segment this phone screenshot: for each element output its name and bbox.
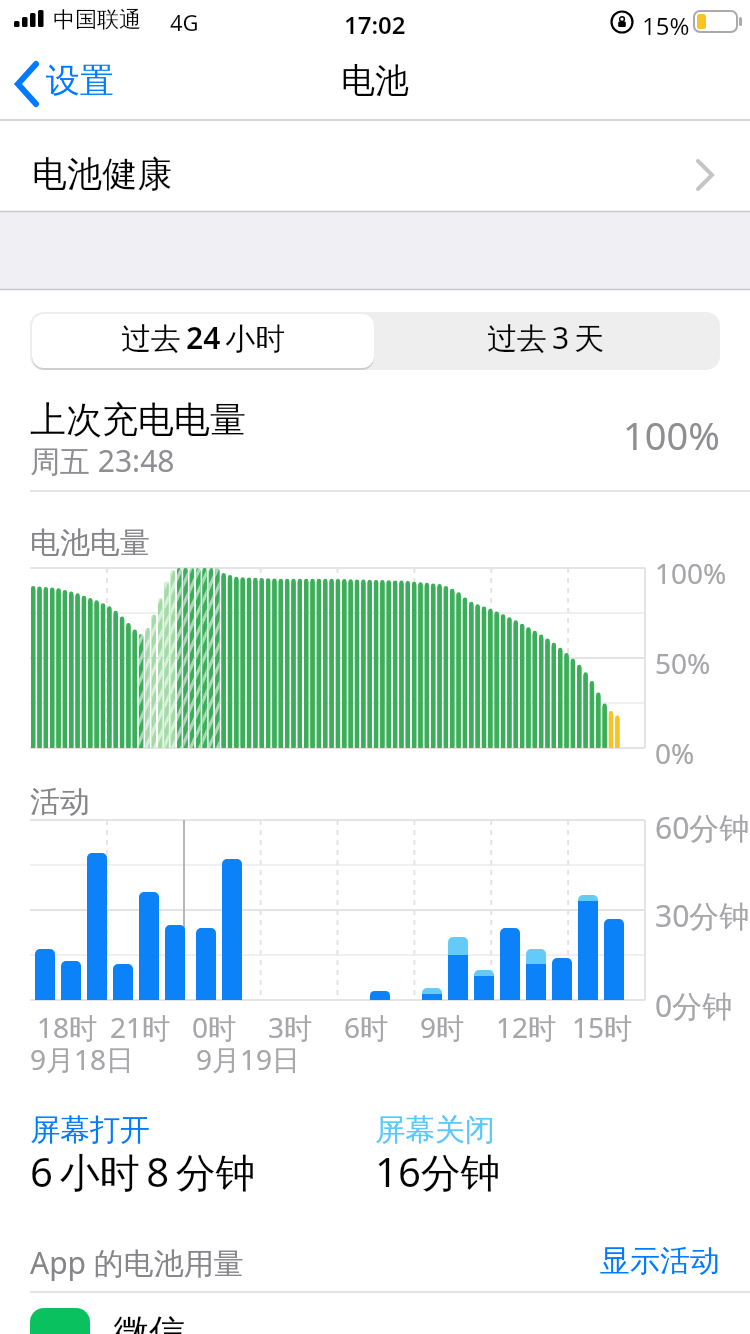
staticText: 9月18日 xyxy=(30,1040,135,1078)
staticText: 电池电量 xyxy=(30,524,150,562)
staticText: 50% xyxy=(655,644,711,682)
staticText: 电池 xyxy=(341,59,409,102)
staticText: 30分钟 xyxy=(655,895,750,936)
staticText: 15时 xyxy=(572,1008,633,1046)
staticText: App 的电池用量 xyxy=(30,1242,244,1283)
staticText: 21时 xyxy=(110,1008,171,1046)
staticText: 9时 xyxy=(420,1008,465,1046)
staticText: 上次充电电量 xyxy=(30,397,246,442)
button[interactable] xyxy=(0,50,130,114)
button[interactable] xyxy=(600,1240,720,1280)
staticText: 6 小时 8 分钟 xyxy=(30,1144,256,1199)
staticText: 0时 xyxy=(192,1008,237,1046)
button[interactable] xyxy=(0,121,750,211)
staticText: 18时 xyxy=(37,1008,98,1046)
staticText: 中国联通 xyxy=(53,6,141,34)
staticText: 15% xyxy=(642,9,690,42)
staticText: 9月19日 xyxy=(196,1040,301,1078)
staticText: 17:02 xyxy=(344,8,406,41)
staticText: 4G xyxy=(170,7,199,37)
staticText: 电池健康 xyxy=(32,152,172,196)
button[interactable] xyxy=(30,312,375,370)
staticText: 100% xyxy=(655,554,727,592)
staticText: 显示活动 xyxy=(600,1242,720,1280)
staticText: 3时 xyxy=(268,1008,313,1046)
staticText: 12时 xyxy=(496,1008,557,1046)
staticText: 设置 xyxy=(46,59,114,102)
staticText: 屏幕打开 xyxy=(30,1111,150,1149)
staticText: 周五 23:48 xyxy=(30,440,175,481)
staticText: 16分钟 xyxy=(375,1144,501,1199)
staticText: 微信 xyxy=(113,1310,185,1334)
staticText: 6时 xyxy=(344,1008,389,1046)
staticText: 60分钟 xyxy=(655,807,750,848)
staticText: 屏幕关闭 xyxy=(375,1111,495,1149)
button[interactable] xyxy=(375,312,720,370)
staticText: 活动 xyxy=(30,783,90,821)
staticText: 100% xyxy=(623,409,720,461)
staticText: 0% xyxy=(655,734,695,772)
button[interactable] xyxy=(0,1294,750,1334)
staticText: 过去 3 天 xyxy=(487,317,605,358)
staticText: 过去 24 小时 xyxy=(121,317,286,358)
staticText: 0分钟 xyxy=(655,985,733,1026)
